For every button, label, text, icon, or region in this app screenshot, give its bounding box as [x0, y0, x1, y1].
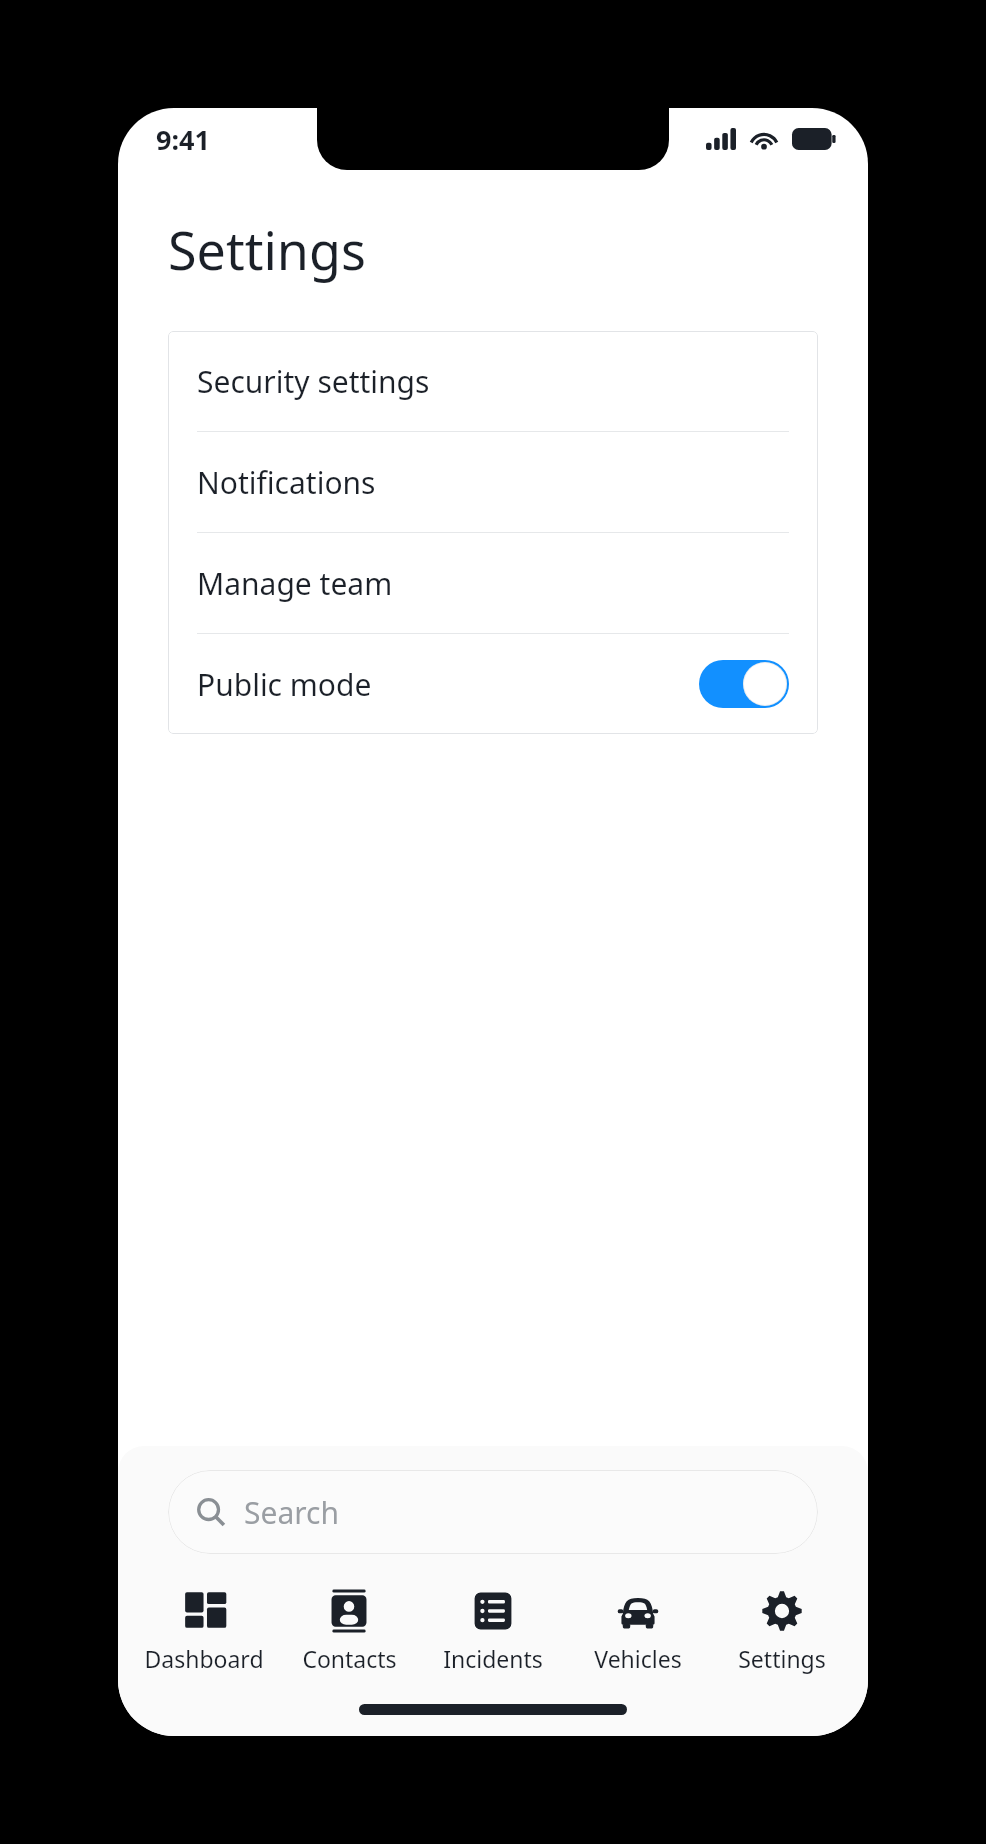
button[interactable]: Search	[168, 1470, 818, 1554]
staticText: Settings	[738, 1643, 826, 1674]
button[interactable]: Security settings	[168, 331, 818, 432]
button[interactable]: Vehicles	[574, 1584, 702, 1678]
staticText: Incidents	[443, 1643, 543, 1674]
staticText: Security settings	[197, 361, 430, 402]
staticText: Manage team	[197, 563, 393, 604]
button[interactable]: Incidents	[429, 1584, 557, 1678]
button[interactable]: Dashboard	[140, 1584, 268, 1678]
staticText: Search	[244, 1492, 339, 1533]
staticText: Dashboard	[144, 1643, 264, 1674]
button[interactable]: Contacts	[285, 1584, 413, 1678]
staticText: Notifications	[197, 462, 376, 503]
staticText: Public mode	[197, 664, 699, 705]
staticText: Vehicles	[594, 1643, 682, 1674]
staticText: Settings	[168, 214, 366, 285]
button[interactable]: Settings	[718, 1584, 846, 1678]
staticText: Contacts	[302, 1643, 397, 1674]
staticText: 9:41	[156, 121, 210, 158]
button[interactable]: Public mode	[168, 634, 818, 734]
button[interactable]: Notifications	[168, 432, 818, 533]
button[interactable]: Manage team	[168, 533, 818, 634]
